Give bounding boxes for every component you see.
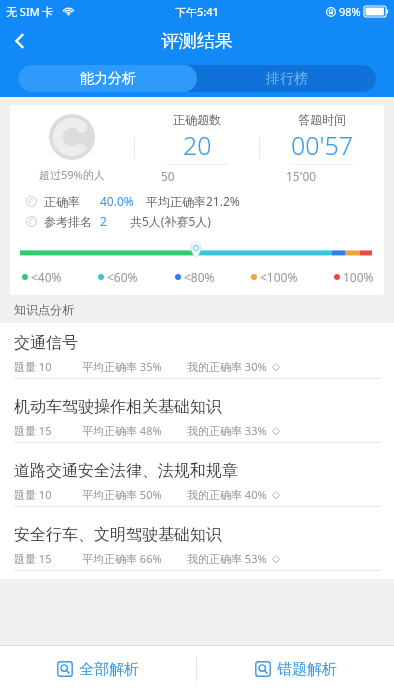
staticText: 下午5:41: [175, 4, 219, 19]
button[interactable]: 交通信号: [0, 323, 394, 387]
staticText: 98%: [339, 4, 361, 19]
staticText: 无 SIM 卡: [6, 4, 54, 19]
staticText: 安全行车、文明驾驶基础知识: [14, 525, 222, 545]
staticText: 平均正确率 48%: [82, 423, 162, 438]
staticText: 20: [183, 128, 212, 162]
staticText: 平均正确率 35%: [82, 359, 162, 374]
staticText: <100%: [260, 269, 298, 285]
staticText: <60%: [107, 269, 138, 285]
staticText: 正确题数: [173, 112, 221, 127]
staticText: 15'00: [286, 168, 317, 184]
staticText: 2: [100, 213, 107, 229]
staticText: 全部解析: [79, 660, 139, 679]
staticText: 我的正确率 30%: [187, 359, 267, 374]
staticText: 题量 15: [14, 423, 52, 438]
staticText: 共5人(补赛5人): [130, 213, 211, 229]
staticText: 错题解析: [277, 660, 337, 679]
staticText: 超过59%的人: [39, 167, 105, 182]
staticText: <80%: [184, 269, 215, 285]
staticText: 机动车驾驶操作相关基础知识: [14, 397, 222, 417]
button[interactable]: 能力分析: [18, 65, 197, 92]
staticText: 正确率: [44, 194, 80, 209]
button[interactable]: 道路交通安全法律、法规和规章: [0, 451, 394, 515]
staticText: 平均正确率21.2%: [146, 193, 240, 209]
button[interactable]: 安全行车、文明驾驶基础知识: [0, 515, 394, 579]
staticText: 题量 10: [14, 359, 52, 374]
button[interactable]: 全部解析: [0, 646, 196, 692]
staticText: 知识点分析: [14, 302, 74, 317]
staticText: 交通信号: [14, 333, 78, 353]
button[interactable]: 错题解析: [197, 646, 394, 692]
button[interactable]: 排行榜: [197, 65, 376, 92]
button[interactable]: 机动车驾驶操作相关基础知识: [0, 387, 394, 451]
staticText: <40%: [31, 269, 62, 285]
staticText: 平均正确率 50%: [82, 487, 162, 502]
staticText: 评测结果: [161, 30, 233, 53]
button[interactable]: 返回: [0, 22, 40, 60]
staticText: 排行榜: [266, 70, 308, 88]
staticText: 100%: [343, 269, 374, 285]
staticText: 题量 10: [14, 487, 52, 502]
staticText: 我的正确率 33%: [187, 423, 267, 438]
staticText: 答题时间: [298, 112, 346, 127]
staticText: 道路交通安全法律、法规和规章: [14, 461, 238, 481]
staticText: 40.0%: [100, 193, 134, 209]
staticText: 我的正确率 40%: [187, 487, 267, 502]
staticText: 我的正确率 53%: [187, 551, 267, 566]
staticText: 能力分析: [80, 70, 136, 88]
staticText: 50: [161, 168, 175, 184]
staticText: 平均正确率 66%: [82, 551, 162, 566]
staticText: 题量 15: [14, 551, 52, 566]
staticText: 00'57: [291, 128, 354, 162]
staticText: 参考排名: [44, 214, 92, 229]
